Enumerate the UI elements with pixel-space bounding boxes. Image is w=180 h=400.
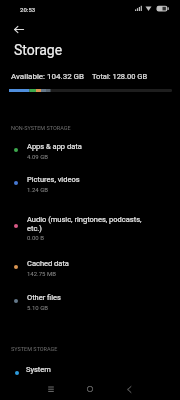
button[interactable]: System xyxy=(0,364,180,382)
button[interactable] xyxy=(111,381,147,397)
button[interactable]: Audio (music, ringtones, podcasts, xyxy=(0,215,180,251)
button[interactable]: Apps & app data xyxy=(0,142,180,168)
button[interactable]: Other files xyxy=(0,293,180,319)
staticText: Available: 104.32 GB xyxy=(11,72,85,81)
button[interactable] xyxy=(33,381,69,397)
staticText: Apps & app data xyxy=(27,142,82,151)
staticText: 5.10 GB xyxy=(27,304,49,311)
button[interactable] xyxy=(72,381,108,397)
staticText: System xyxy=(26,365,51,374)
button[interactable] xyxy=(4,18,28,38)
staticText: 1.24 GB xyxy=(27,186,49,193)
button[interactable]: Cached data xyxy=(0,259,180,285)
staticText: Total: 128.00 GB xyxy=(92,72,148,81)
staticText: SYSTEM STORAGE xyxy=(11,346,58,352)
staticText: Pictures, videos xyxy=(27,175,80,184)
staticText: 4.09 GB xyxy=(27,153,49,160)
staticText: Audio (music, ringtones, podcasts, xyxy=(27,215,142,224)
staticText: 20:53 xyxy=(20,6,36,13)
staticText: etc.) xyxy=(27,224,42,233)
staticText: 0.00 B xyxy=(27,234,44,241)
staticText: Cached data xyxy=(27,259,69,268)
staticText: Other files xyxy=(27,293,61,302)
staticText: NON-SYSTEM STORAGE xyxy=(11,125,71,131)
staticText: 142.75 MB xyxy=(27,270,56,277)
button[interactable]: Pictures, videos xyxy=(0,175,180,201)
staticText: Storage xyxy=(14,42,63,58)
